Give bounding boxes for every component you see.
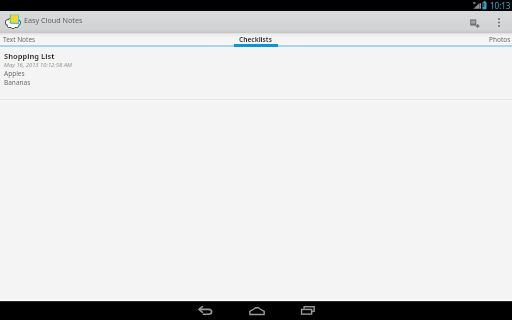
staticText: Bananas <box>4 78 31 87</box>
staticText: Checklists <box>239 35 272 44</box>
button[interactable]: New note <box>465 12 489 33</box>
button[interactable]: Back <box>180 301 231 320</box>
button[interactable]: More options <box>489 12 509 33</box>
button[interactable]: Home <box>231 301 282 320</box>
button[interactable]: Photos <box>341 33 512 47</box>
button[interactable]: Checklists <box>170 33 341 47</box>
button[interactable]: Text Notes <box>0 33 170 47</box>
button[interactable]: Shopping List <box>0 47 512 99</box>
staticText: May 16, 2013 10:12:58 AM <box>4 61 72 69</box>
staticText: Easy Cloud Notes <box>24 15 83 25</box>
staticText: Photos <box>489 35 511 44</box>
staticText: Text Notes <box>3 35 36 44</box>
staticText: Shopping List <box>4 51 55 61</box>
button[interactable]: Recent apps <box>282 301 333 320</box>
staticText: 10:13 <box>490 0 511 11</box>
staticText: Apples <box>4 69 25 78</box>
